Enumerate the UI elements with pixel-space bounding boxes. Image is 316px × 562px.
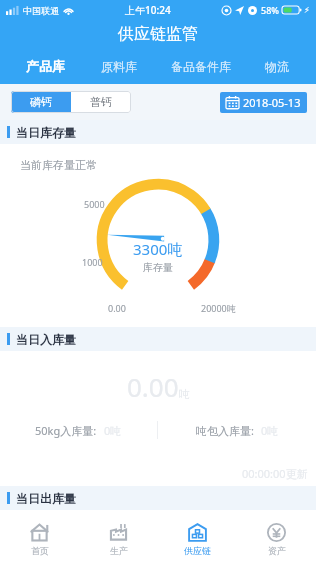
staticText: 0.00: [127, 369, 179, 404]
button[interactable]: 备品备件库: [155, 48, 246, 84]
button[interactable]: 原料库: [82, 48, 155, 84]
staticText: 资产: [268, 545, 286, 556]
staticText: 当日库存量: [16, 125, 76, 140]
staticText: 中国联通: [23, 5, 59, 16]
staticText: 当日出库量: [16, 491, 76, 506]
button[interactable]: 资产: [237, 515, 316, 562]
staticText: 吨包入库量:: [196, 423, 254, 438]
staticText: 3300吨: [133, 239, 183, 259]
staticText: 0.00: [108, 302, 126, 314]
staticText: 产品库: [26, 58, 65, 74]
button[interactable]: 2018-05-13: [226, 95, 301, 110]
button[interactable]: 普钙: [71, 91, 131, 113]
staticText: 物流: [265, 59, 289, 74]
staticText: 吨: [179, 387, 190, 401]
button[interactable]: 供应链: [158, 515, 237, 562]
button[interactable]: 首页: [0, 515, 79, 562]
staticText: ⚡: [304, 6, 310, 15]
staticText: 供应链监管: [118, 24, 198, 44]
staticText: 5000: [84, 198, 105, 210]
staticText: 上午10:24: [125, 3, 171, 17]
staticText: 50kg入库量:: [35, 423, 97, 438]
staticText: 普钙: [90, 95, 112, 109]
staticText: 生产: [110, 545, 128, 556]
staticText: 00:00:00更新: [242, 466, 308, 481]
staticText: 原料库: [101, 59, 137, 74]
staticText: 0吨: [104, 423, 122, 438]
staticText: 20000吨: [201, 302, 236, 314]
button[interactable]: 物流: [246, 48, 308, 84]
staticText: 库存量: [143, 261, 173, 274]
staticText: 58%: [261, 4, 279, 16]
staticText: 当日入库量: [16, 332, 76, 347]
staticText: 首页: [31, 545, 49, 556]
staticText: 备品备件库: [171, 59, 231, 74]
staticText: 1000: [82, 256, 103, 268]
button[interactable]: 生产: [79, 515, 158, 562]
staticText: 当前库存量正常: [20, 158, 97, 172]
staticText: 2018-05-13: [243, 95, 301, 110]
staticText: 供应链: [184, 545, 211, 556]
staticText: 磷钙: [30, 95, 52, 109]
button[interactable]: 产品库: [8, 48, 82, 84]
button[interactable]: 磷钙: [11, 91, 71, 113]
staticText: 0吨: [261, 423, 279, 438]
